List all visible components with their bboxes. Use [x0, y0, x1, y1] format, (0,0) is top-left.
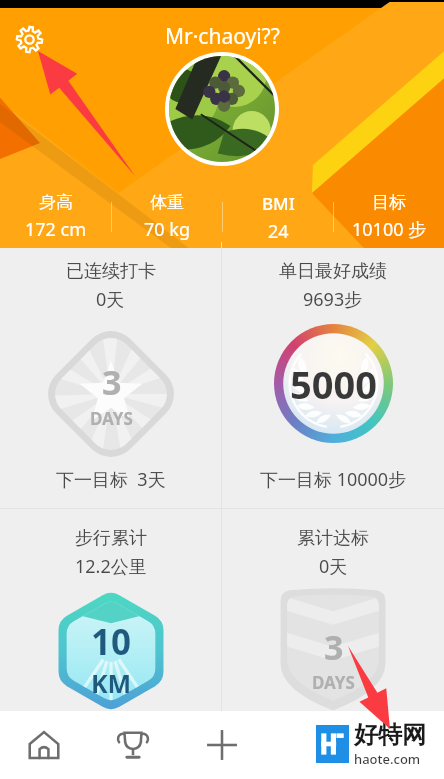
staticText: 10 [91, 618, 132, 666]
button[interactable]: Achievements [88, 711, 177, 779]
button[interactable]: 身高 [0, 192, 111, 242]
staticText: 10100 步 [352, 217, 427, 242]
button[interactable]: BMI [223, 192, 333, 242]
staticText: 下一目标 3天 [56, 467, 166, 492]
staticText: 9693步 [303, 287, 363, 312]
button[interactable]: 已连续打卡 [0, 242, 221, 508]
staticText: 下一目标 10000步 [260, 467, 407, 492]
button[interactable]: Add [177, 711, 266, 779]
staticText: 0天 [319, 554, 348, 579]
staticText: 3 [324, 624, 344, 670]
staticText: BMI [262, 192, 295, 215]
staticText: Mr·chaoyi?? [165, 22, 280, 51]
staticText: 0天 [96, 287, 125, 312]
staticText: DAYS [312, 671, 355, 694]
staticText: 172 cm [25, 217, 87, 242]
button[interactable]: Profile photo [169, 56, 275, 162]
staticText: 3 [102, 359, 122, 405]
staticText: 步行累计 [75, 527, 147, 550]
staticText: 累计达标 [297, 527, 369, 550]
button[interactable]: 步行累计 [0, 509, 221, 711]
staticText: KM [91, 666, 132, 700]
staticText: 70 kg [144, 217, 190, 242]
staticText: 24 [268, 219, 289, 242]
staticText: 单日最好成绩 [279, 260, 387, 283]
button[interactable]: Settings [6, 16, 52, 62]
button[interactable]: 单日最好成绩 [222, 242, 444, 508]
staticText: 身高 [39, 192, 73, 213]
staticText: 12.2公里 [75, 554, 147, 579]
button[interactable]: Home [0, 711, 88, 779]
staticText: 已连续打卡 [66, 260, 156, 283]
button[interactable]: 累计达标 [222, 509, 444, 711]
button[interactable]: 目标 [334, 192, 444, 242]
staticText: 5000 [290, 358, 377, 410]
staticText: 好特网 [354, 720, 426, 750]
staticText: haote.com [354, 750, 421, 768]
staticText: 目标 [372, 192, 406, 213]
button[interactable]: 体重 [112, 192, 222, 242]
staticText: 体重 [150, 192, 184, 213]
staticText: DAYS [90, 407, 133, 430]
